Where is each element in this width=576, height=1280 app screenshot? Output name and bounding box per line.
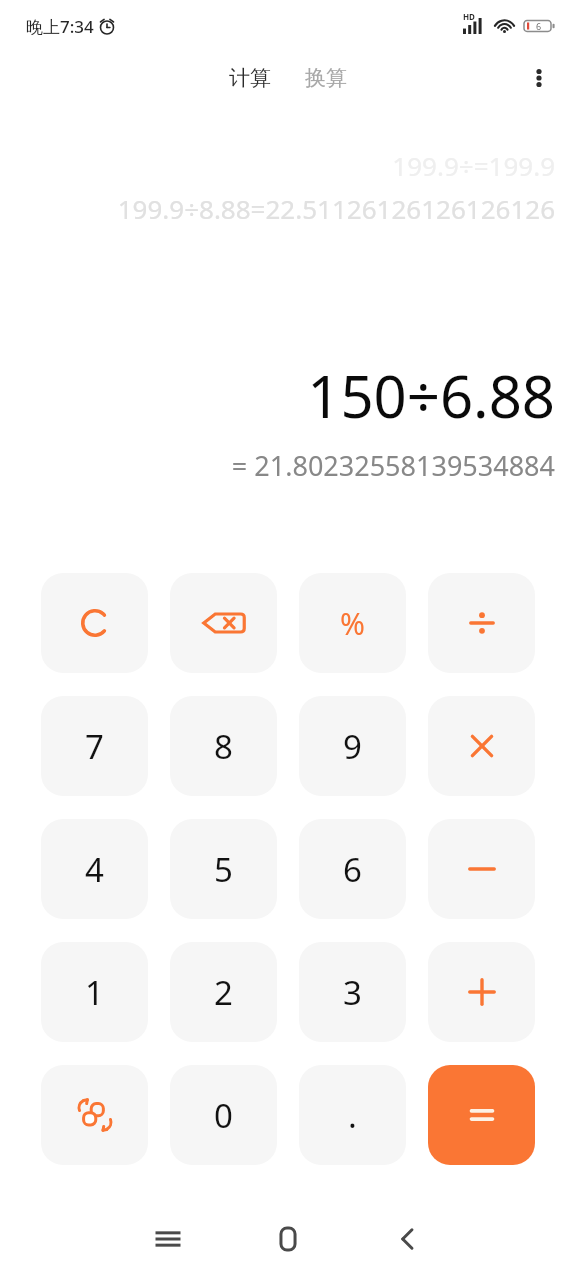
- staticText: = 21.80232558139534884: [0, 447, 555, 484]
- staticText: 6: [536, 20, 542, 32]
- staticText: 4: [85, 847, 104, 892]
- button[interactable]: 4: [41, 819, 148, 919]
- button[interactable]: [428, 573, 535, 673]
- button[interactable]: 7: [41, 696, 148, 796]
- button[interactable]: Equals: [428, 1065, 535, 1165]
- button[interactable]: 8: [170, 696, 277, 796]
- staticText: 0: [214, 1093, 233, 1138]
- button[interactable]: 1: [41, 942, 148, 1042]
- staticText: 7: [85, 724, 104, 769]
- staticText: %: [340, 603, 365, 644]
- button[interactable]: Unit converter: [41, 1065, 148, 1165]
- button[interactable]: Backspace: [170, 573, 277, 673]
- staticText: 199.9÷=199.9: [0, 148, 555, 183]
- staticText: 晚上7:34: [26, 15, 94, 38]
- staticText: 5: [214, 847, 233, 892]
- staticText: 6: [343, 847, 362, 892]
- button[interactable]: %: [299, 573, 406, 673]
- staticText: 换算: [305, 65, 347, 91]
- staticText: 150÷6.88: [0, 356, 555, 435]
- button[interactable]: Multiply: [428, 696, 535, 796]
- staticText: 8: [214, 724, 233, 769]
- button[interactable]: .: [299, 1065, 406, 1165]
- button[interactable]: Home: [258, 1209, 318, 1269]
- button[interactable]: Back: [378, 1209, 438, 1269]
- button[interactable]: 9: [299, 696, 406, 796]
- staticText: .: [348, 1093, 357, 1138]
- button[interactable]: More options: [516, 55, 562, 101]
- staticText: 199.9÷8.88=22.51126126126126126: [0, 191, 555, 226]
- button[interactable]: 换算: [299, 59, 353, 97]
- staticText: 2: [214, 970, 233, 1015]
- button[interactable]: Plus: [428, 942, 535, 1042]
- button[interactable]: 5: [170, 819, 277, 919]
- staticText: 1: [85, 970, 104, 1015]
- button[interactable]: 0: [170, 1065, 277, 1165]
- staticText: 计算: [229, 65, 271, 91]
- staticText: 9: [343, 724, 362, 769]
- staticText: HD: [463, 11, 475, 22]
- button[interactable]: Minus: [428, 819, 535, 919]
- button[interactable]: 3: [299, 942, 406, 1042]
- button[interactable]: 计算: [223, 59, 277, 97]
- button[interactable]: 2: [170, 942, 277, 1042]
- button[interactable]: [41, 573, 148, 673]
- staticText: 3: [343, 970, 362, 1015]
- button[interactable]: Recents: [138, 1209, 198, 1269]
- button[interactable]: 6: [299, 819, 406, 919]
